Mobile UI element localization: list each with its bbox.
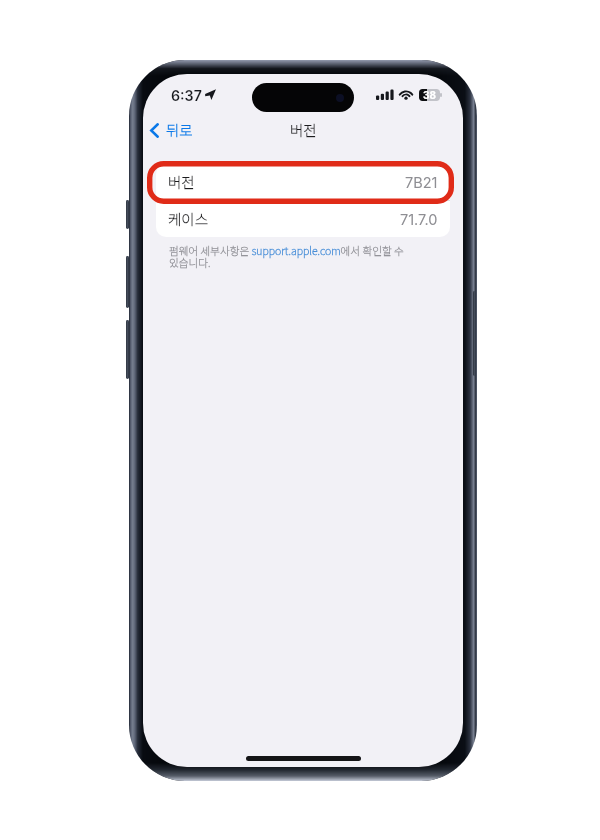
- staticText: 71.7.0: [400, 211, 438, 229]
- button[interactable]: 케이스: [156, 201, 450, 237]
- staticText: 38: [423, 89, 436, 101]
- staticText: 6:37: [171, 87, 202, 104]
- staticText: 케이스: [168, 208, 209, 229]
- staticText: 7B21: [405, 174, 438, 192]
- staticText: 펌웨어 세부사항은 support.apple.com에서 확인할 수 있습니다…: [169, 243, 409, 270]
- button[interactable]: 버전: [156, 164, 450, 200]
- staticText: 버전: [168, 171, 195, 192]
- staticText: 버전: [290, 119, 317, 140]
- staticText: 뒤로: [166, 119, 193, 140]
- button[interactable]: 뒤로: [143, 117, 190, 148]
